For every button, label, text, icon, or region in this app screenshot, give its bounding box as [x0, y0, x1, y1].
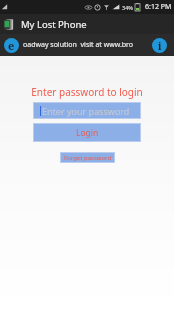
button[interactable]: Login	[34, 124, 140, 141]
staticText: Login	[76, 127, 99, 139]
staticText: 6:12 PM	[145, 2, 172, 12]
staticText: Enter password to login	[31, 85, 143, 99]
staticText: e	[8, 38, 15, 53]
staticText: 34%	[122, 4, 133, 11]
staticText: Enter your password	[42, 105, 130, 117]
other: Advertiser logo	[4, 38, 19, 53]
staticText: i	[158, 39, 162, 53]
button[interactable]: Forget password	[61, 153, 114, 162]
button[interactable]: Ad information	[152, 38, 167, 53]
button[interactable]: Advertiser logo	[0, 34, 174, 56]
button[interactable]: Enter your password	[34, 103, 140, 118]
staticText: Forget password	[64, 154, 112, 162]
staticText: oadway solution visit at www.bro	[23, 40, 134, 50]
staticText: My Lost Phone	[21, 18, 87, 31]
